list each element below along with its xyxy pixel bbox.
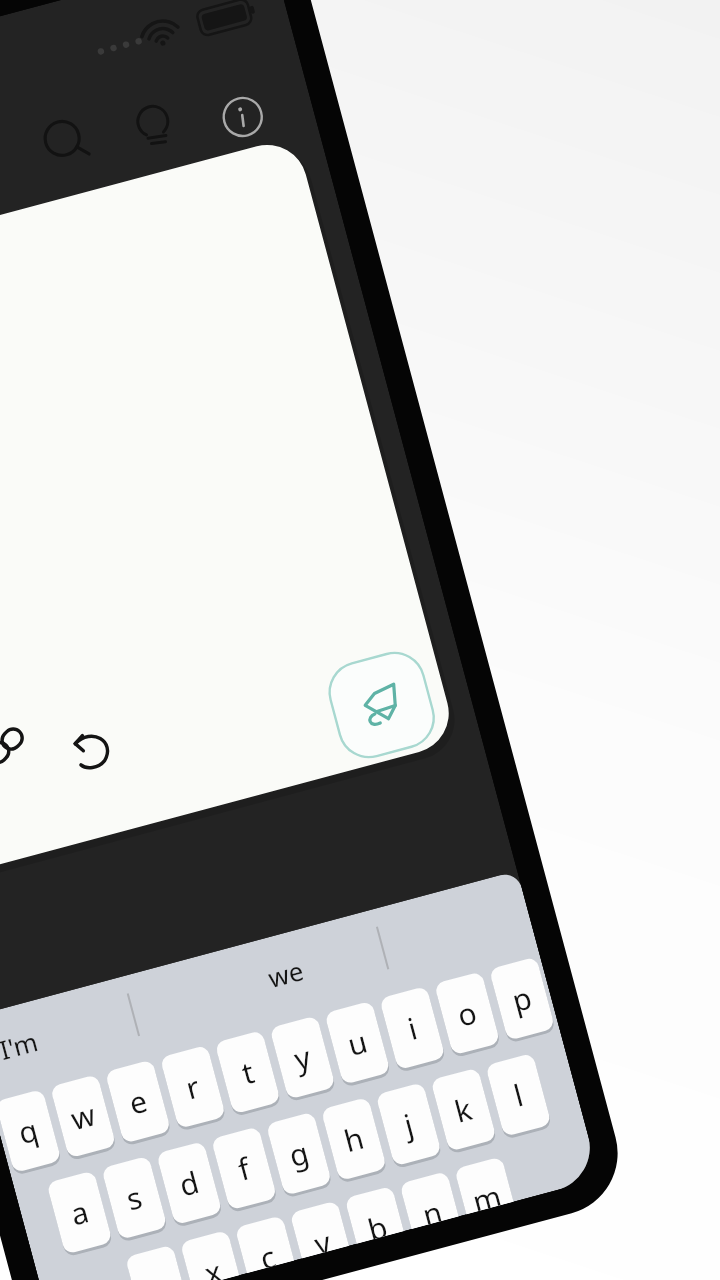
button[interactable]: Card box note composer on phone bbox=[0, 0, 720, 1280]
